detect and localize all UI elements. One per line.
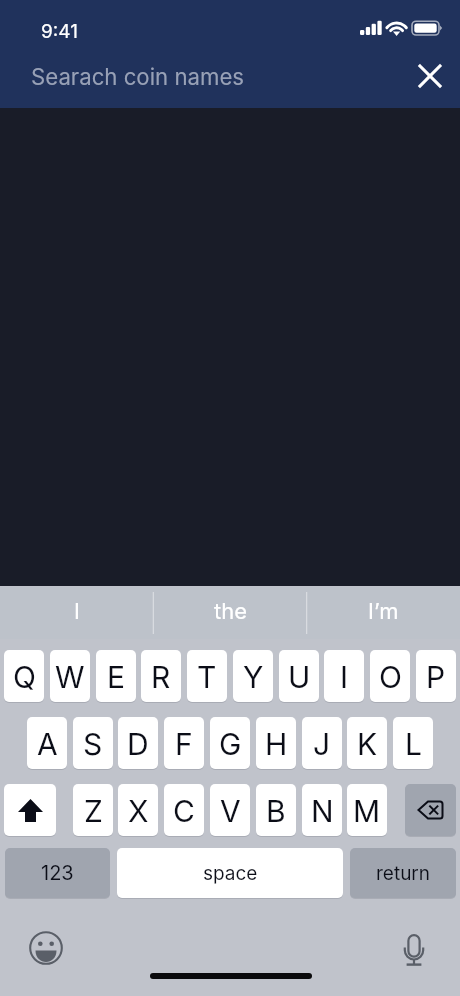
button[interactable]: Backspace xyxy=(405,784,456,836)
staticText: I xyxy=(74,598,80,625)
button[interactable]: H xyxy=(256,717,296,769)
button[interactable]: Close search xyxy=(410,56,450,96)
button[interactable]: R xyxy=(141,650,181,702)
staticText: V xyxy=(220,793,241,829)
staticText: Z xyxy=(84,793,103,829)
staticText: E xyxy=(107,659,126,695)
button[interactable]: F xyxy=(164,717,204,769)
staticText: X xyxy=(128,793,149,829)
button[interactable]: L xyxy=(393,717,433,769)
button[interactable]: space xyxy=(117,848,343,898)
staticText: 123 xyxy=(41,861,74,885)
button[interactable]: the xyxy=(154,587,307,639)
staticText: space xyxy=(203,862,258,885)
button[interactable]: V xyxy=(210,784,250,836)
button[interactable]: M xyxy=(347,784,387,836)
button[interactable]: Z xyxy=(73,784,113,836)
staticText: K xyxy=(357,726,378,762)
button[interactable]: I xyxy=(324,650,364,702)
staticText: the xyxy=(214,598,248,625)
button[interactable]: 123 xyxy=(5,848,110,898)
button[interactable]: I’m xyxy=(307,587,460,639)
staticText: Searach coin names xyxy=(31,63,245,90)
staticText: F xyxy=(175,726,193,762)
staticText: P xyxy=(426,659,446,695)
button[interactable]: Emoji keyboard xyxy=(24,926,68,970)
staticText: return xyxy=(376,862,431,885)
button[interactable]: Q xyxy=(4,650,44,702)
button[interactable]: Y xyxy=(233,650,273,702)
button[interactable]: E xyxy=(96,650,136,702)
button[interactable]: B xyxy=(256,784,296,836)
button[interactable]: W xyxy=(50,650,90,702)
staticText: B xyxy=(266,793,286,829)
button[interactable]: T xyxy=(187,650,227,702)
button[interactable]: Dictation xyxy=(394,931,434,971)
button[interactable]: O xyxy=(370,650,410,702)
button[interactable]: A xyxy=(27,717,67,769)
staticText: I xyxy=(340,659,349,695)
staticText: M xyxy=(353,793,381,829)
staticText: I’m xyxy=(368,598,399,625)
button[interactable]: C xyxy=(164,784,204,836)
button[interactable]: I xyxy=(0,587,154,639)
button[interactable]: Shift xyxy=(4,784,56,836)
staticText: R xyxy=(151,659,171,695)
staticText: G xyxy=(219,726,242,762)
button[interactable]: P xyxy=(416,650,456,702)
staticText: L xyxy=(405,726,422,762)
staticText: J xyxy=(313,726,331,762)
button[interactable]: D xyxy=(118,717,158,769)
staticText: O xyxy=(379,659,402,695)
button[interactable]: return xyxy=(350,848,456,898)
button[interactable]: S xyxy=(73,717,113,769)
staticText: S xyxy=(83,726,103,762)
staticText: Y xyxy=(243,659,264,695)
staticText: C xyxy=(173,793,195,829)
button[interactable]: N xyxy=(302,784,342,836)
staticText: U xyxy=(288,659,311,695)
staticText: W xyxy=(55,659,85,695)
staticText: 9:41 xyxy=(41,20,78,43)
button[interactable]: U xyxy=(279,650,319,702)
button[interactable]: K xyxy=(347,717,387,769)
staticText: T xyxy=(197,659,217,695)
staticText: Q xyxy=(13,659,36,695)
button[interactable]: J xyxy=(302,717,342,769)
button[interactable]: G xyxy=(210,717,250,769)
staticText: A xyxy=(37,726,58,762)
staticText: D xyxy=(127,726,149,762)
button[interactable]: X xyxy=(118,784,158,836)
staticText: N xyxy=(311,793,334,829)
staticText: H xyxy=(265,726,288,762)
